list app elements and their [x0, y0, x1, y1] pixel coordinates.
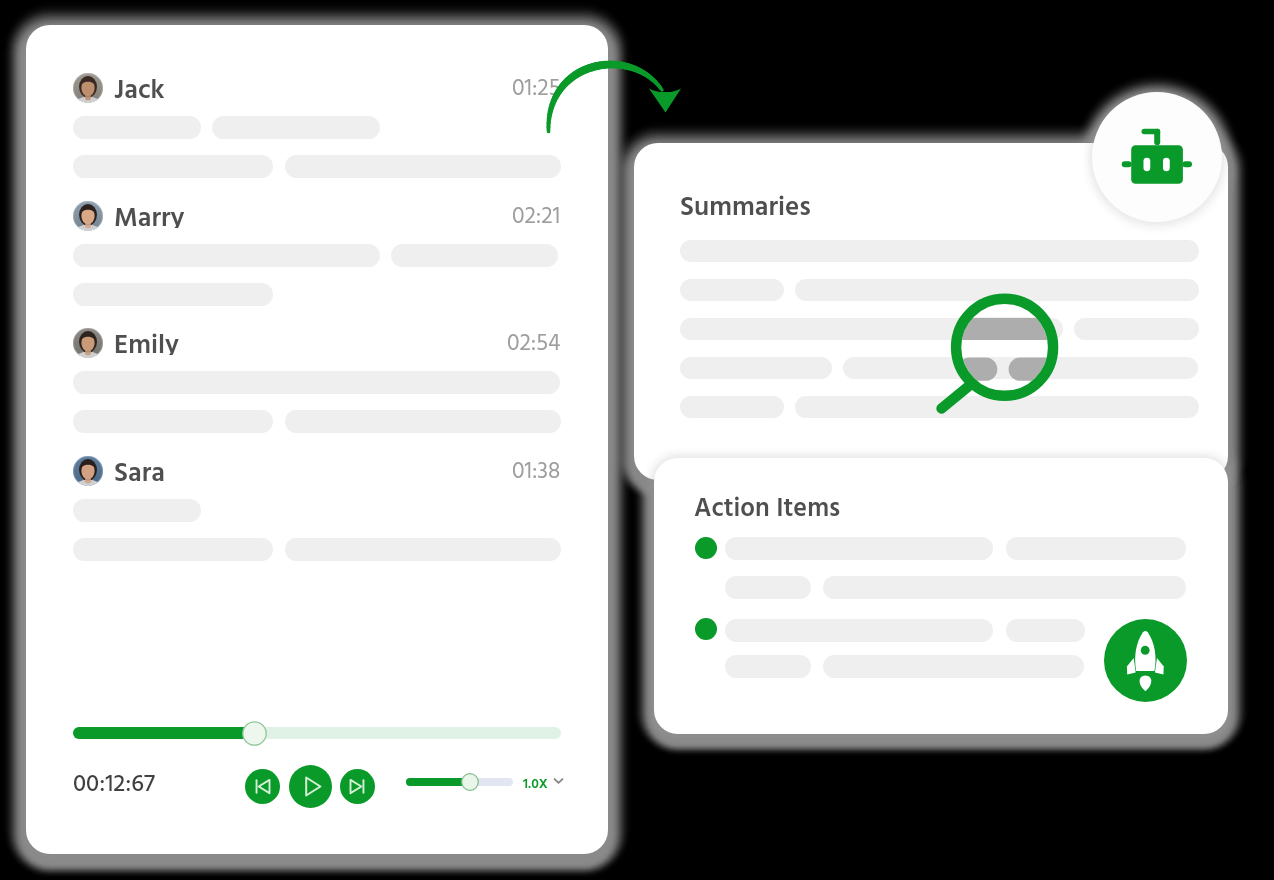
button[interactable] [73, 727, 561, 739]
staticText: Action Items [694, 489, 841, 531]
staticText: 02:54 [507, 326, 561, 356]
button[interactable]: Play [289, 765, 332, 808]
staticText: 01:38 [512, 454, 561, 484]
button[interactable]: 1.0X [523, 773, 548, 795]
button[interactable]: Previous [245, 769, 280, 804]
staticText: Jack [114, 70, 165, 100]
staticText: Marry [114, 198, 185, 228]
staticText: 01:25 [512, 71, 561, 101]
staticText: Emily [114, 325, 180, 355]
staticText: Summaries [680, 187, 811, 230]
button[interactable]: AI assistant [1092, 92, 1222, 222]
button[interactable]: Change speed [554, 778, 563, 784]
staticText: Sara [114, 453, 165, 483]
button[interactable]: Marry [73, 201, 561, 231]
button[interactable]: Action item 1 [695, 537, 717, 559]
button[interactable]: Emily [73, 328, 561, 358]
button[interactable] [406, 778, 513, 786]
staticText: 00:12:67 [73, 766, 155, 804]
staticText: 02:21 [512, 199, 561, 229]
button[interactable]: Action item 2 [695, 618, 717, 640]
button[interactable]: Sara [73, 456, 561, 486]
button[interactable]: Jack [73, 73, 561, 103]
button[interactable]: Launch [1104, 619, 1187, 702]
button[interactable]: Next [340, 769, 375, 804]
